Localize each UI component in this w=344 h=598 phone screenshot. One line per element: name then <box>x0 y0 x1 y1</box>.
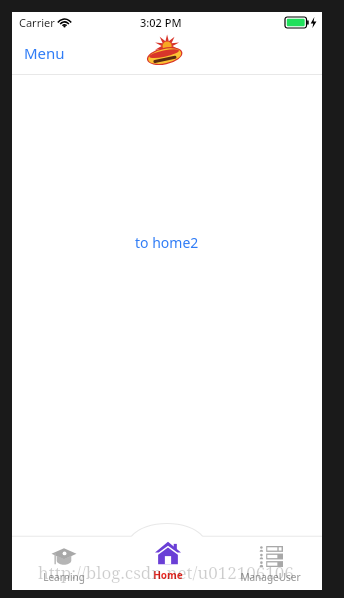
button[interactable]: Menu <box>18 37 71 69</box>
staticText: to home2 <box>135 233 199 252</box>
staticText: ManageUser <box>240 570 301 584</box>
other: Home <box>155 541 181 565</box>
button[interactable]: to home2 <box>129 230 205 255</box>
staticText: Home <box>153 568 183 582</box>
button[interactable]: Manage User <box>219 535 322 590</box>
staticText: Menu <box>24 43 65 63</box>
other: Learning <box>51 547 77 567</box>
other: Manage User <box>259 546 283 567</box>
button[interactable]: Home <box>116 535 219 590</box>
staticText: 3:02 PM <box>140 15 182 30</box>
staticText: Learning <box>43 570 85 584</box>
button[interactable]: Church's Chicken logo <box>144 36 186 72</box>
staticText: Carrier <box>19 15 55 30</box>
staticText: http://blog.csdn.net/u012106106 <box>38 561 294 584</box>
button[interactable]: Learning <box>12 535 116 590</box>
